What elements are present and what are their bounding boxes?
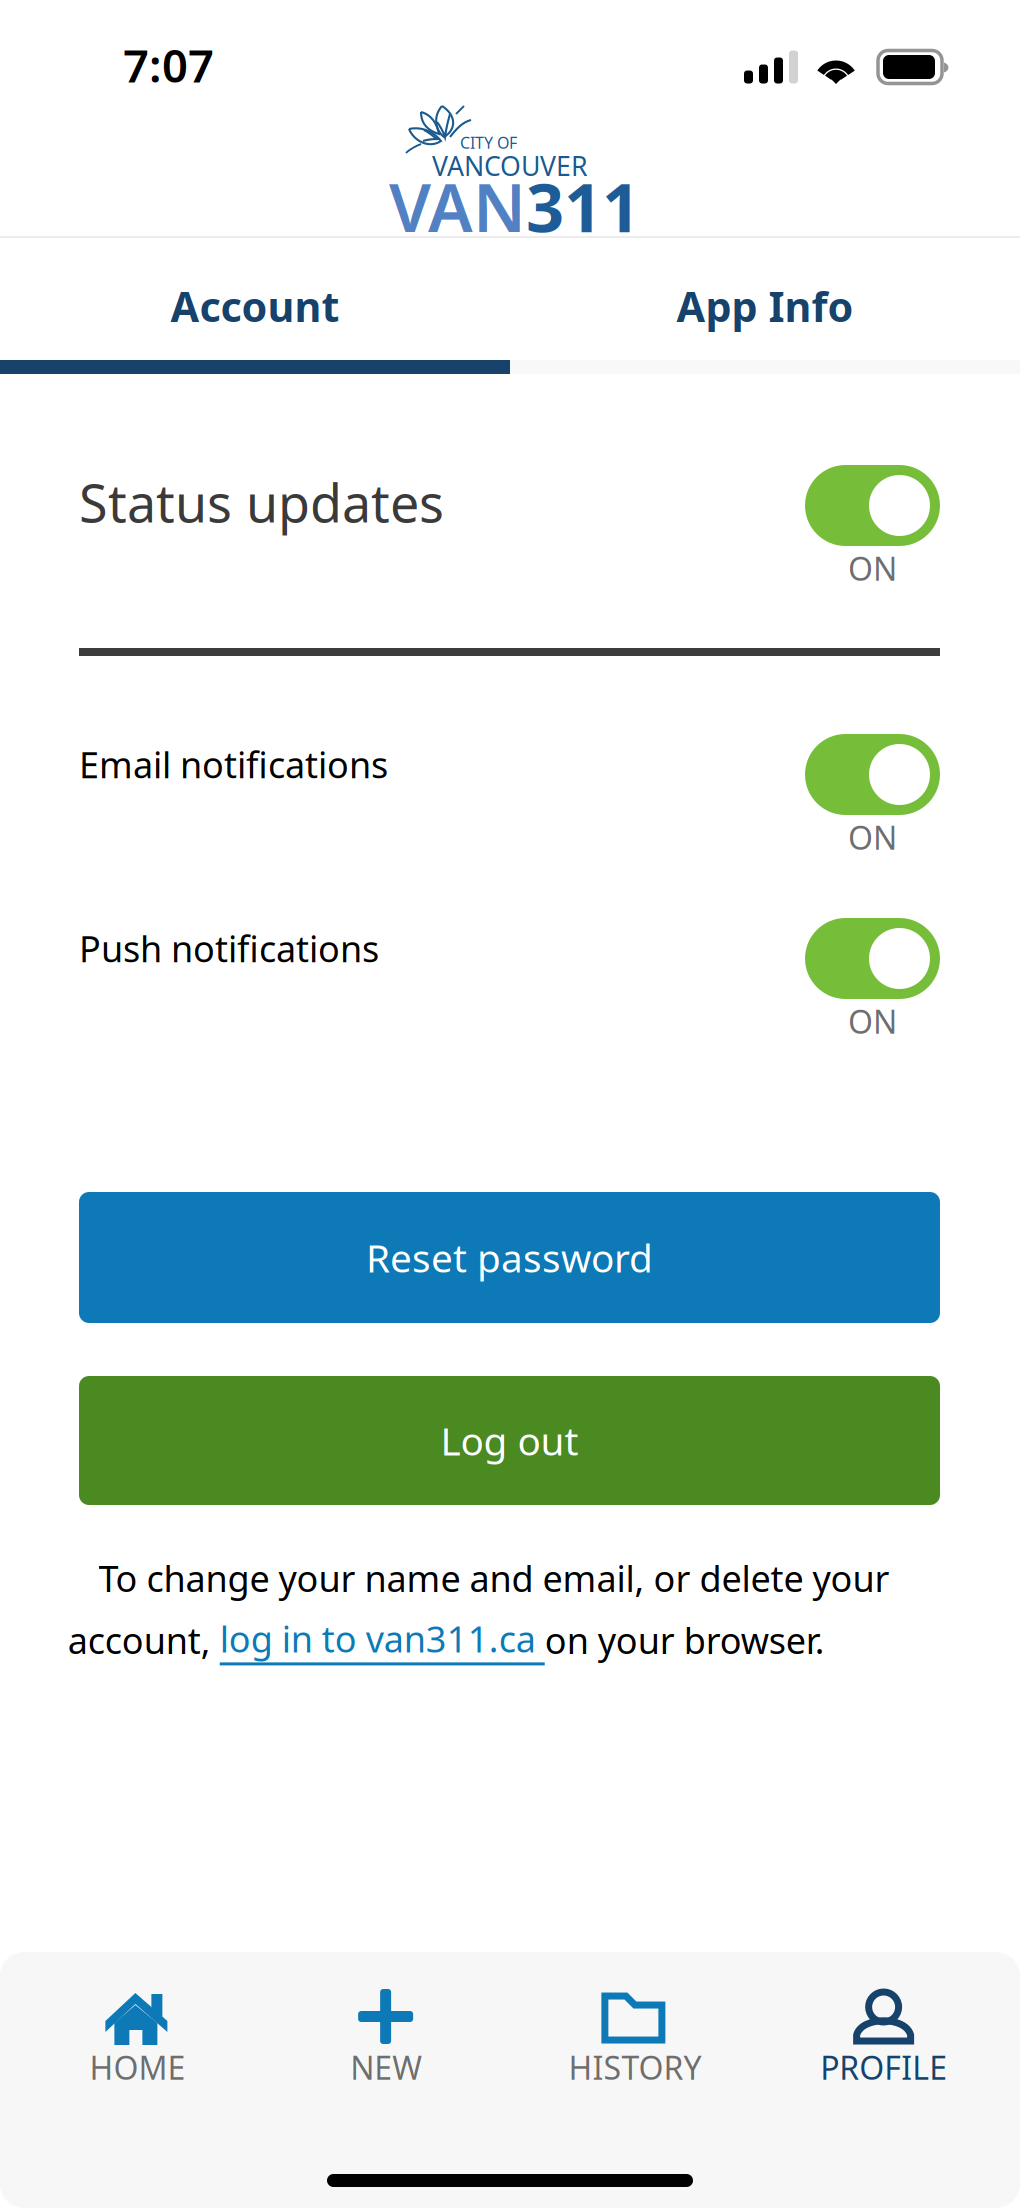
staticText: Push notifications [79,924,379,972]
staticText: CITY OF [460,132,517,153]
button[interactable]: Status updates toggle [805,465,940,589]
staticText: ON [848,547,897,589]
button[interactable]: Push notifications toggle [805,918,940,1042]
staticText: HISTORY [568,2046,701,2088]
staticText: VANCOUVER [432,148,588,183]
button[interactable]: App Info [510,238,1020,374]
staticText: Email notifications [79,740,388,788]
staticText: Log out [440,1415,578,1466]
button[interactable]: PROFILE [759,1952,1008,2088]
staticText: Account [170,279,339,333]
staticText: PROFILE [820,2046,947,2088]
staticText: 7:07 [123,35,214,95]
button[interactable]: log in to van311.ca [220,1615,545,1665]
staticText: ON [848,816,897,858]
staticText: NEW [350,2046,422,2088]
button[interactable]: HOME [13,1952,262,2088]
staticText: VAN [389,162,526,250]
staticText: on your browser. [545,1616,825,1664]
button[interactable]: NEW [262,1952,511,2088]
staticText: log in to van311.ca [220,1615,545,1662]
button[interactable]: Account [0,238,510,374]
staticText: To change your name and email, or delete… [98,1554,889,1602]
staticText: account, [68,1616,220,1664]
button[interactable]: Log out [79,1376,940,1505]
button[interactable]: Reset password [79,1192,940,1323]
staticText: 311 [526,162,640,250]
staticText: Status updates [79,468,444,537]
staticText: HOME [89,2046,185,2088]
staticText: App Info [676,279,853,333]
staticText: ON [848,1000,897,1042]
button[interactable]: HISTORY [510,1952,759,2088]
button[interactable]: Email notifications toggle [805,734,940,858]
staticText: Reset password [366,1232,653,1283]
